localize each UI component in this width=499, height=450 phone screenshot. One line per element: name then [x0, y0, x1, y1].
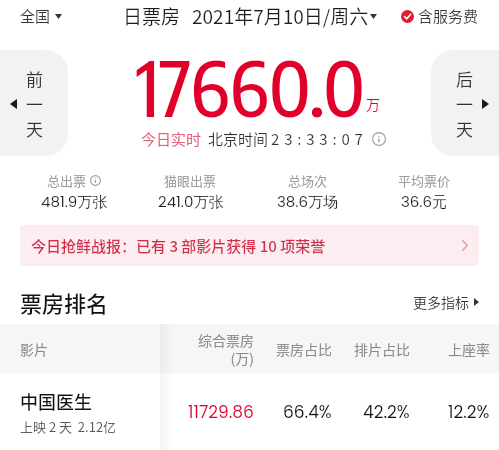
button[interactable]: 更多指标	[413, 286, 479, 318]
staticText: 影片	[20, 339, 48, 359]
staticText: 北京时间	[208, 128, 269, 150]
staticText: 17660.0	[136, 39, 366, 134]
staticText: 2021年7月10日/周六	[192, 2, 369, 30]
staticText: 38.6万场	[277, 191, 338, 212]
staticText: 平均票价	[398, 171, 451, 190]
button[interactable]: 今日抢鲜战报：已有 3 部影片获得 10 项荣誉	[20, 225, 479, 266]
staticText: 今日抢鲜战报：已有 3 部影片获得 10 项荣誉	[31, 235, 326, 257]
staticText: 全国	[20, 5, 51, 27]
staticText: 66.4%	[283, 400, 332, 424]
button[interactable]: 中国医生	[0, 373, 499, 450]
button[interactable]: 全国	[12, 1, 70, 31]
staticText: 前	[26, 66, 43, 91]
staticText: 后	[456, 66, 473, 91]
staticText: 含服务费	[418, 5, 479, 27]
staticText: 481.9万张	[41, 191, 108, 212]
staticText: 总出票	[47, 171, 87, 190]
staticText: 综合票房 (万)	[198, 330, 254, 368]
staticText: 排片占比	[354, 339, 410, 359]
staticText: 上座率	[448, 339, 490, 359]
staticText: 猫眼出票	[164, 171, 217, 190]
button[interactable]: 前一天	[0, 50, 68, 156]
staticText: 中国医生	[20, 388, 92, 414]
staticText: 12.2%	[448, 400, 490, 424]
staticText: 36.6元	[401, 191, 448, 212]
staticText: 日票房	[123, 2, 181, 30]
staticText: 天	[456, 116, 473, 141]
staticText: 11729.86	[188, 400, 254, 424]
staticText: 一	[26, 91, 43, 116]
staticText: 更多指标	[413, 292, 469, 312]
staticText: 总场次	[288, 171, 328, 190]
staticText: 一	[456, 91, 473, 116]
staticText: 票房排名	[20, 286, 109, 318]
staticText: 票房占比	[276, 339, 332, 359]
staticText: 万	[366, 94, 380, 114]
button[interactable]: 含服务费	[397, 1, 483, 31]
staticText: 天	[26, 116, 43, 141]
button[interactable]: 2021年7月10日/周六	[192, 2, 377, 30]
staticText: 今日实时	[141, 128, 202, 150]
staticText: 23:33:07	[271, 128, 368, 150]
staticText: 42.2%	[363, 400, 410, 424]
staticText: 上映 2 天 2.12亿	[20, 417, 117, 436]
button[interactable]: 后一天	[431, 50, 499, 156]
staticText: 241.0万张	[158, 191, 224, 212]
